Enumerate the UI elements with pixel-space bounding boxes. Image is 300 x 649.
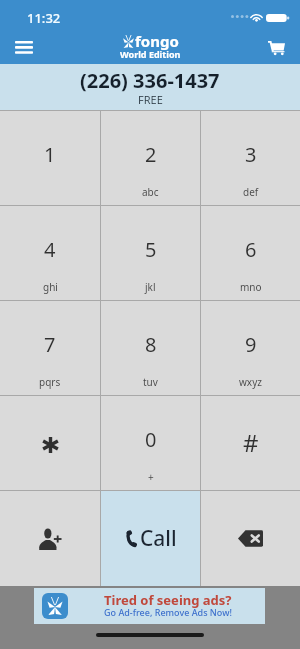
staticText: 1	[44, 141, 56, 168]
staticText: mno	[240, 280, 262, 294]
button[interactable]: #	[201, 396, 300, 490]
button[interactable]: 3	[201, 111, 300, 205]
staticText: 5	[145, 236, 157, 263]
staticText: Call	[140, 524, 177, 553]
button[interactable]: 6	[201, 206, 300, 300]
button[interactable]: 9	[201, 301, 300, 395]
button[interactable]: Call	[101, 491, 200, 586]
button[interactable]: 5	[101, 206, 200, 300]
staticText: fongo	[135, 31, 179, 51]
staticText: 6	[245, 236, 257, 263]
button[interactable]: 0	[101, 396, 200, 490]
button[interactable]: 2	[101, 111, 200, 205]
staticText: +	[148, 470, 154, 484]
staticText: 11:32	[27, 9, 61, 27]
button[interactable]: Menu	[4, 30, 44, 64]
staticText: 0	[145, 426, 157, 453]
staticText: abc	[142, 185, 159, 199]
button[interactable]: 4	[0, 206, 100, 300]
button[interactable]: Cart	[256, 30, 296, 64]
staticText: 7	[44, 331, 56, 358]
button[interactable]: 8	[101, 301, 200, 395]
staticText: wxyz	[239, 375, 262, 389]
staticText: #	[243, 426, 259, 459]
staticText: pqrs	[39, 375, 61, 389]
staticText: 3	[245, 141, 257, 168]
staticText: 8	[145, 331, 157, 358]
button[interactable]	[0, 396, 100, 490]
staticText: 2	[145, 141, 157, 168]
button[interactable]: 7	[0, 301, 100, 395]
staticText: 4	[44, 236, 56, 263]
staticText: 9	[245, 331, 257, 358]
staticText: Tired of seeing ads?	[104, 591, 232, 609]
button[interactable]: Add contact	[0, 491, 100, 586]
staticText: Go Ad-free, Remove Ads Now!	[104, 606, 232, 618]
staticText: ghi	[43, 280, 58, 294]
button[interactable]: 1	[0, 111, 100, 205]
staticText: def	[243, 185, 259, 199]
staticText: FREE	[138, 92, 163, 107]
staticText: World Edition	[120, 48, 181, 60]
staticText: tuv	[143, 375, 158, 389]
staticText: (226) 336-1437	[80, 67, 220, 94]
staticText: jkl	[145, 280, 156, 294]
button[interactable]: Tired of seeing ads?	[34, 588, 265, 624]
button[interactable]: Backspace	[201, 491, 300, 586]
